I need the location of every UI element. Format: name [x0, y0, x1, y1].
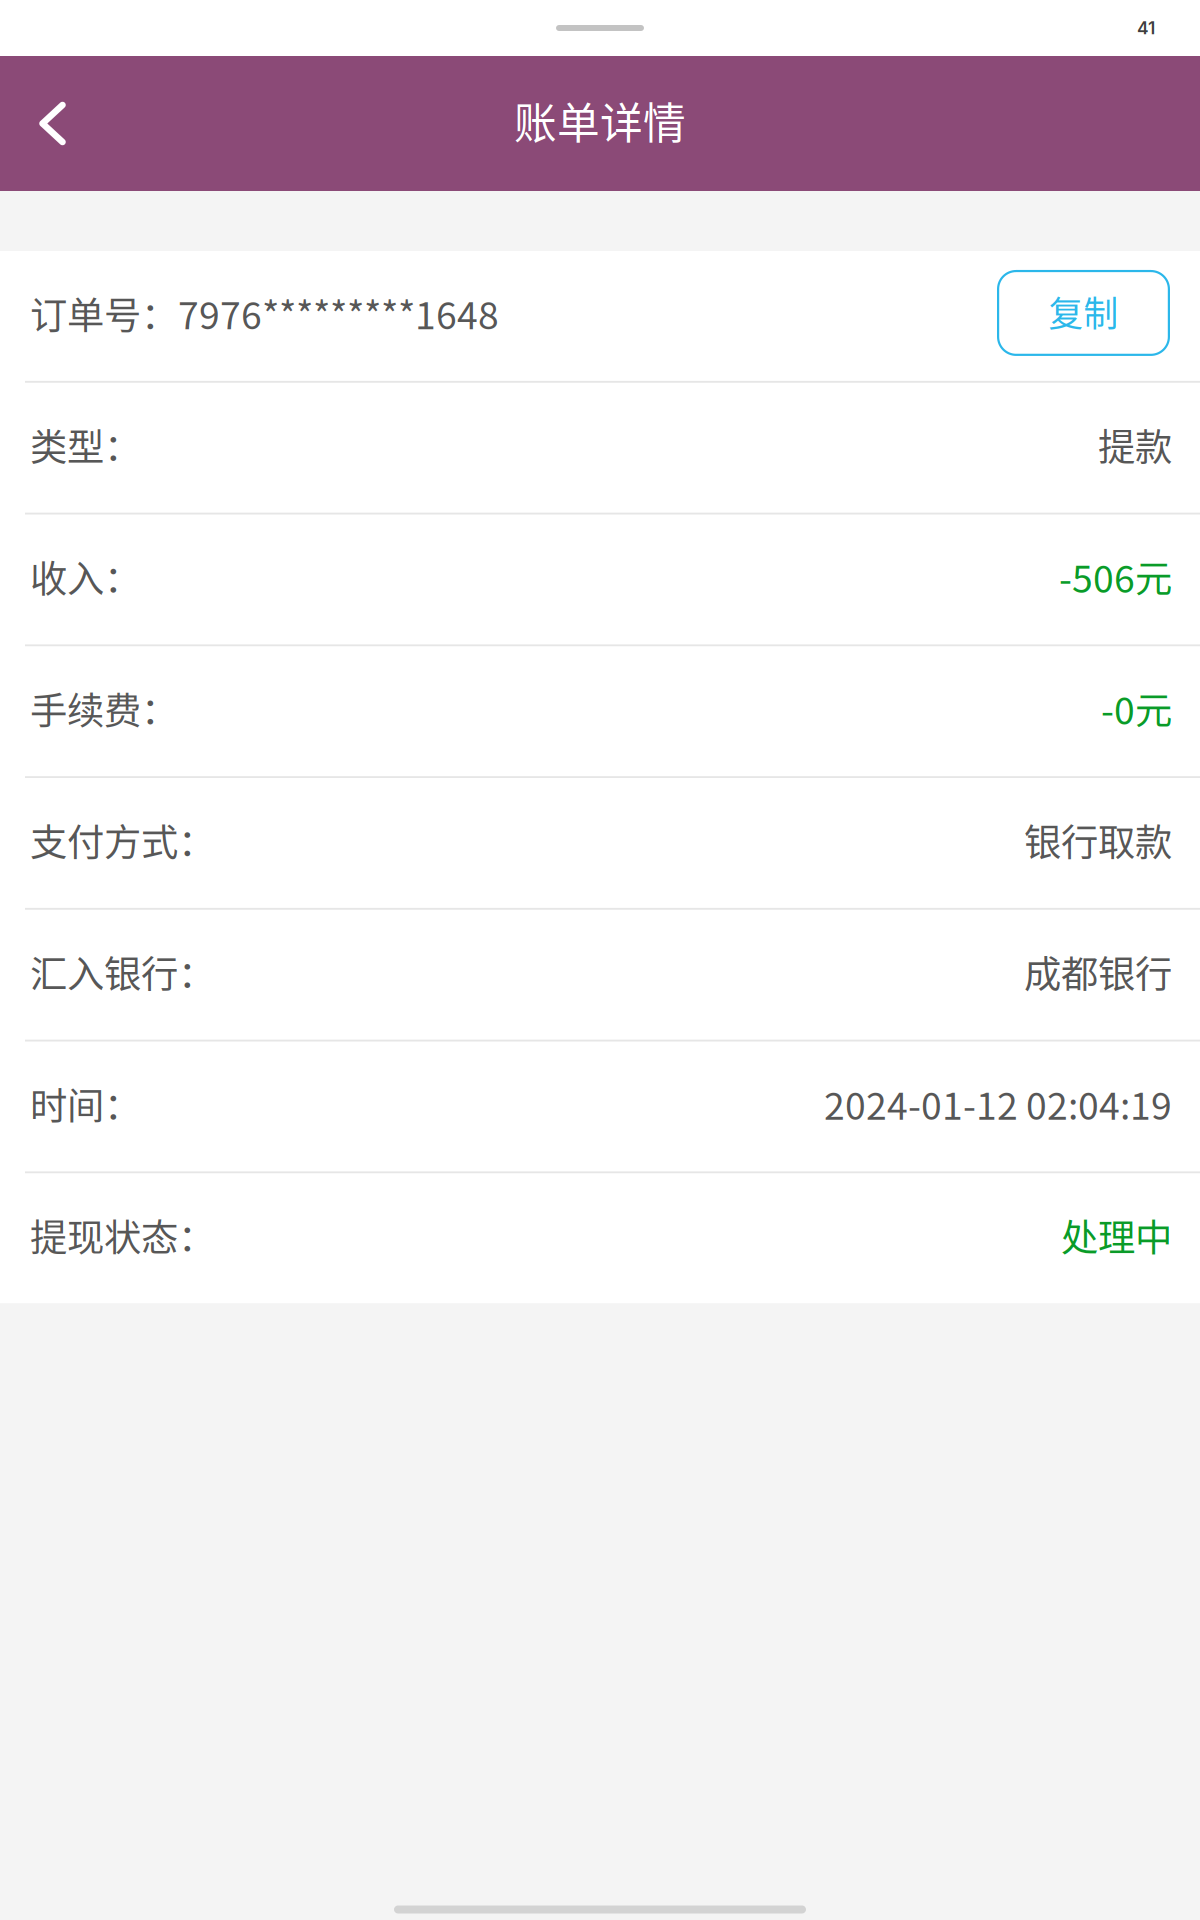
staticText: 41	[1137, 17, 1155, 38]
staticText: 类型：	[30, 418, 141, 472]
staticText: 汇入银行：	[30, 945, 215, 999]
button[interactable]: 复制	[997, 270, 1170, 356]
staticText: 银行取款	[1024, 813, 1172, 867]
staticText: 时间：	[30, 1076, 141, 1130]
button[interactable]: Back	[0, 56, 105, 191]
staticText: 提款	[1098, 418, 1172, 472]
staticText: 支付方式：	[30, 813, 215, 867]
staticText: 成都银行	[1024, 945, 1172, 999]
staticText: 收入：	[30, 549, 141, 603]
staticText: 手续费：	[30, 681, 178, 735]
staticText: 提现状态：	[30, 1208, 215, 1262]
staticText: -506元	[1059, 549, 1172, 603]
staticText: 复制	[1048, 286, 1118, 337]
staticText: 处理中	[1061, 1208, 1172, 1262]
staticText: 账单详情	[514, 90, 686, 151]
staticText: -0元	[1101, 681, 1172, 735]
staticText: 订单号：7976*********1648	[30, 286, 499, 340]
staticText: 2024-01-12 02:04:19	[824, 1076, 1172, 1130]
